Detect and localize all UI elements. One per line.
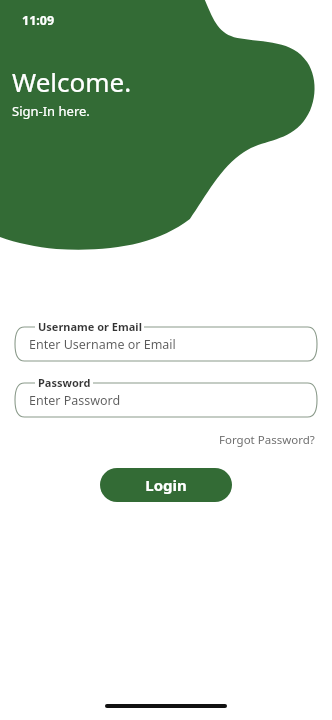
- staticText: Sign-In here.: [12, 102, 90, 120]
- button[interactable]: Forgot Password?: [217, 430, 317, 450]
- staticText: Enter Password: [29, 392, 121, 409]
- staticText: Welcome.: [12, 64, 132, 99]
- other: Home gesture handle: [105, 704, 227, 708]
- button[interactable]: Username or Email: [15, 319, 317, 361]
- button[interactable]: Login: [100, 468, 232, 502]
- staticText: Forgot Password?: [219, 432, 315, 448]
- staticText: Password: [38, 375, 91, 390]
- button[interactable]: Password: [15, 375, 317, 417]
- staticText: 11:09: [22, 12, 55, 29]
- staticText: Username or Email: [38, 319, 142, 334]
- staticText: Login: [145, 475, 187, 495]
- staticText: Enter Username or Email: [29, 336, 176, 353]
